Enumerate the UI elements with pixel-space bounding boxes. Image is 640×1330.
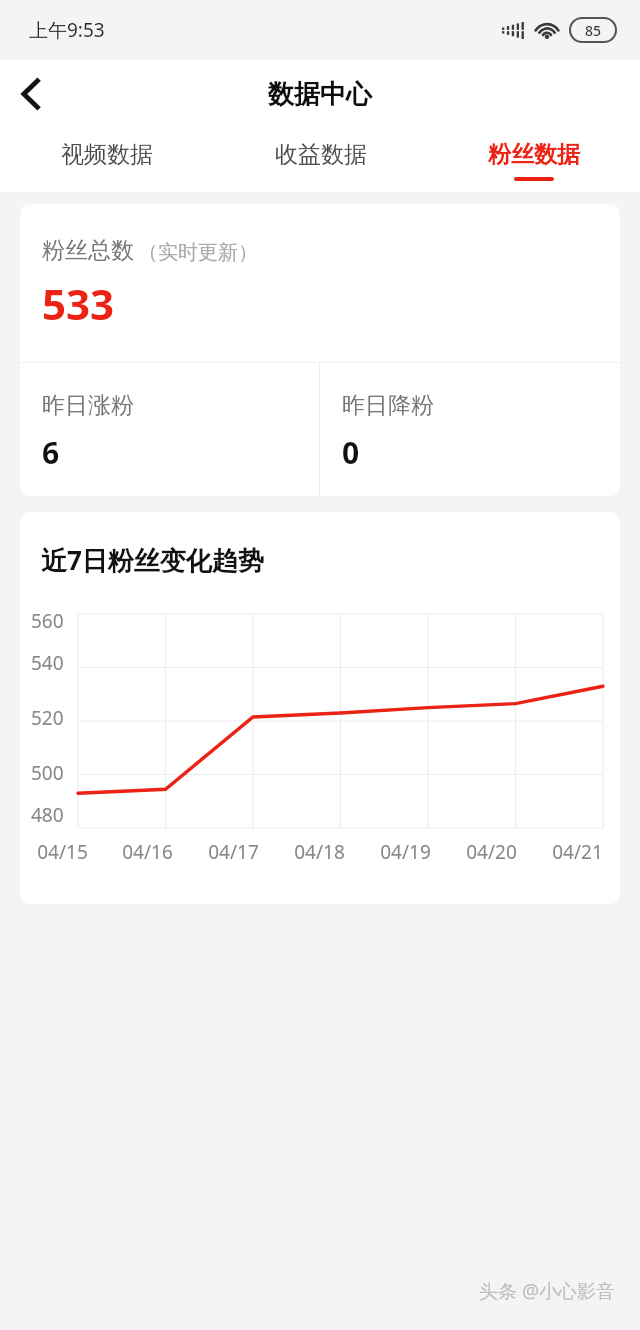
button[interactable]: 收益数据 <box>214 128 427 192</box>
staticText: 500 <box>31 760 64 786</box>
button[interactable]: 昨日降粉 <box>320 363 620 496</box>
staticText: 04/16 <box>122 839 173 865</box>
staticText: （实时更新） <box>138 240 258 265</box>
staticText: 近7日粉丝变化趋势 <box>41 542 264 578</box>
staticText: 6 <box>42 432 60 473</box>
button[interactable]: 视频数据 <box>0 128 214 192</box>
staticText: 04/17 <box>208 839 259 865</box>
staticText: 560 <box>31 608 64 634</box>
staticText: 04/21 <box>552 839 603 865</box>
button[interactable]: 昨日涨粉 <box>20 363 319 496</box>
button[interactable]: Back <box>0 63 62 125</box>
staticText: 昨日涨粉 <box>42 391 134 420</box>
staticText: 540 <box>31 650 64 676</box>
staticText: 粉丝总数 <box>42 236 134 265</box>
staticText: 数据中心 <box>268 78 372 111</box>
staticText: 收益数据 <box>275 140 367 169</box>
staticText: 头条 @小心影音 <box>479 1278 616 1304</box>
staticText: 视频数据 <box>61 140 153 169</box>
staticText: 0 <box>342 432 360 473</box>
button[interactable]: 粉丝总数 <box>20 204 620 362</box>
staticText: 04/20 <box>466 839 517 865</box>
staticText: 480 <box>31 802 64 828</box>
staticText: 520 <box>31 705 64 731</box>
staticText: 85 <box>585 21 602 40</box>
staticText: 04/19 <box>380 839 431 865</box>
button[interactable]: 粉丝数据 <box>427 128 640 192</box>
staticText: 533 <box>42 275 115 332</box>
staticText: 04/18 <box>294 839 345 865</box>
staticText: 粉丝数据 <box>488 140 580 169</box>
button[interactable]: 近7日粉丝变化趋势 <box>20 512 620 904</box>
staticText: 04/15 <box>37 839 88 865</box>
staticText: 上午9:53 <box>29 17 105 43</box>
staticText: 昨日降粉 <box>342 391 434 420</box>
